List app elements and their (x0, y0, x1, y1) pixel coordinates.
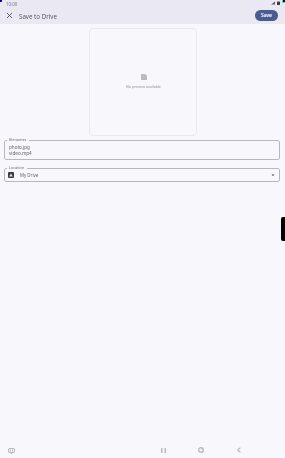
button[interactable]: Save (255, 10, 278, 21)
button[interactable]: Switch keyboard (5, 444, 17, 456)
staticText: No preview available (126, 84, 161, 89)
staticText: Save to Drive (19, 12, 57, 20)
button[interactable]: Home (195, 444, 207, 456)
staticText: Save (261, 12, 272, 19)
staticText: filenames (9, 137, 27, 142)
staticText: photo.jpg (9, 144, 30, 150)
staticText: My Drive (20, 172, 39, 178)
button[interactable]: Back (233, 444, 245, 456)
button[interactable]: Side panel handle (281, 217, 285, 241)
button[interactable]: My Drive (4, 168, 280, 182)
staticText: Location (9, 165, 25, 170)
button[interactable]: Recent apps (157, 444, 169, 456)
staticText: 10:00 (6, 1, 18, 7)
button[interactable]: Close (4, 10, 15, 21)
staticText: video.mp4 (9, 150, 32, 156)
button[interactable]: photo.jpg (4, 140, 280, 160)
